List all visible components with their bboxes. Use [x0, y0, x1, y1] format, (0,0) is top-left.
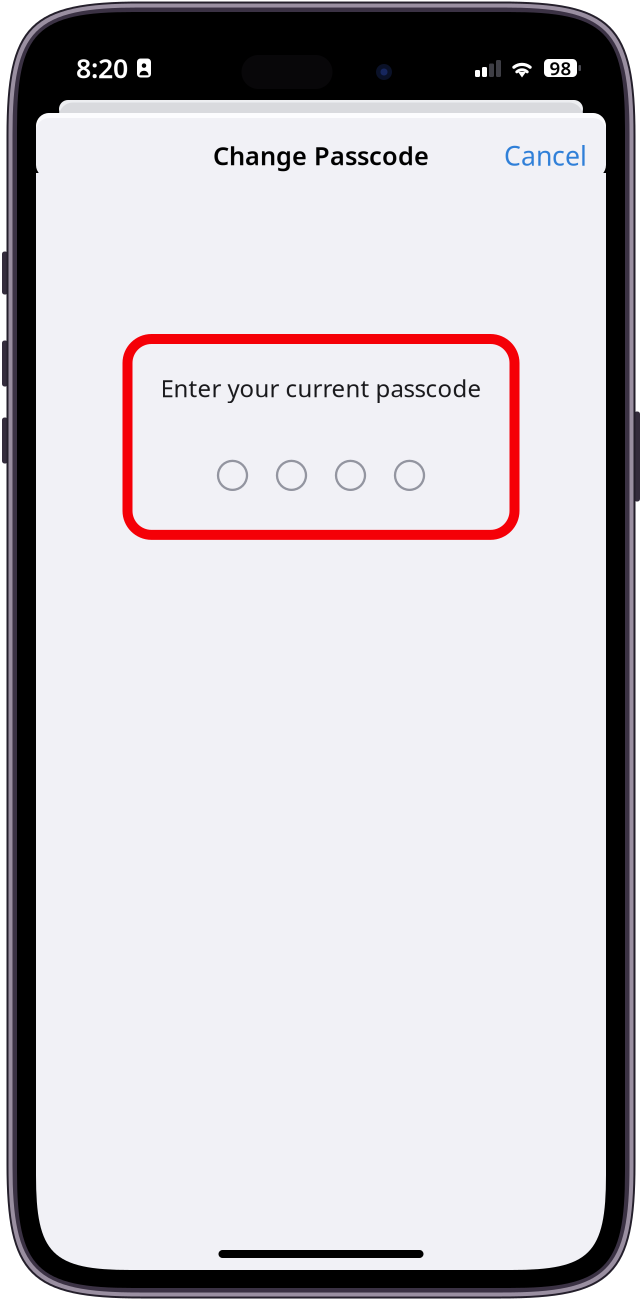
- button[interactable]: Cancel: [493, 127, 598, 184]
- staticText: Change Passcode: [213, 139, 429, 172]
- staticText: 8:20: [76, 50, 128, 86]
- staticText: 98: [549, 56, 571, 80]
- staticText: Cancel: [504, 138, 587, 173]
- staticText: Enter your current passcode: [160, 372, 481, 404]
